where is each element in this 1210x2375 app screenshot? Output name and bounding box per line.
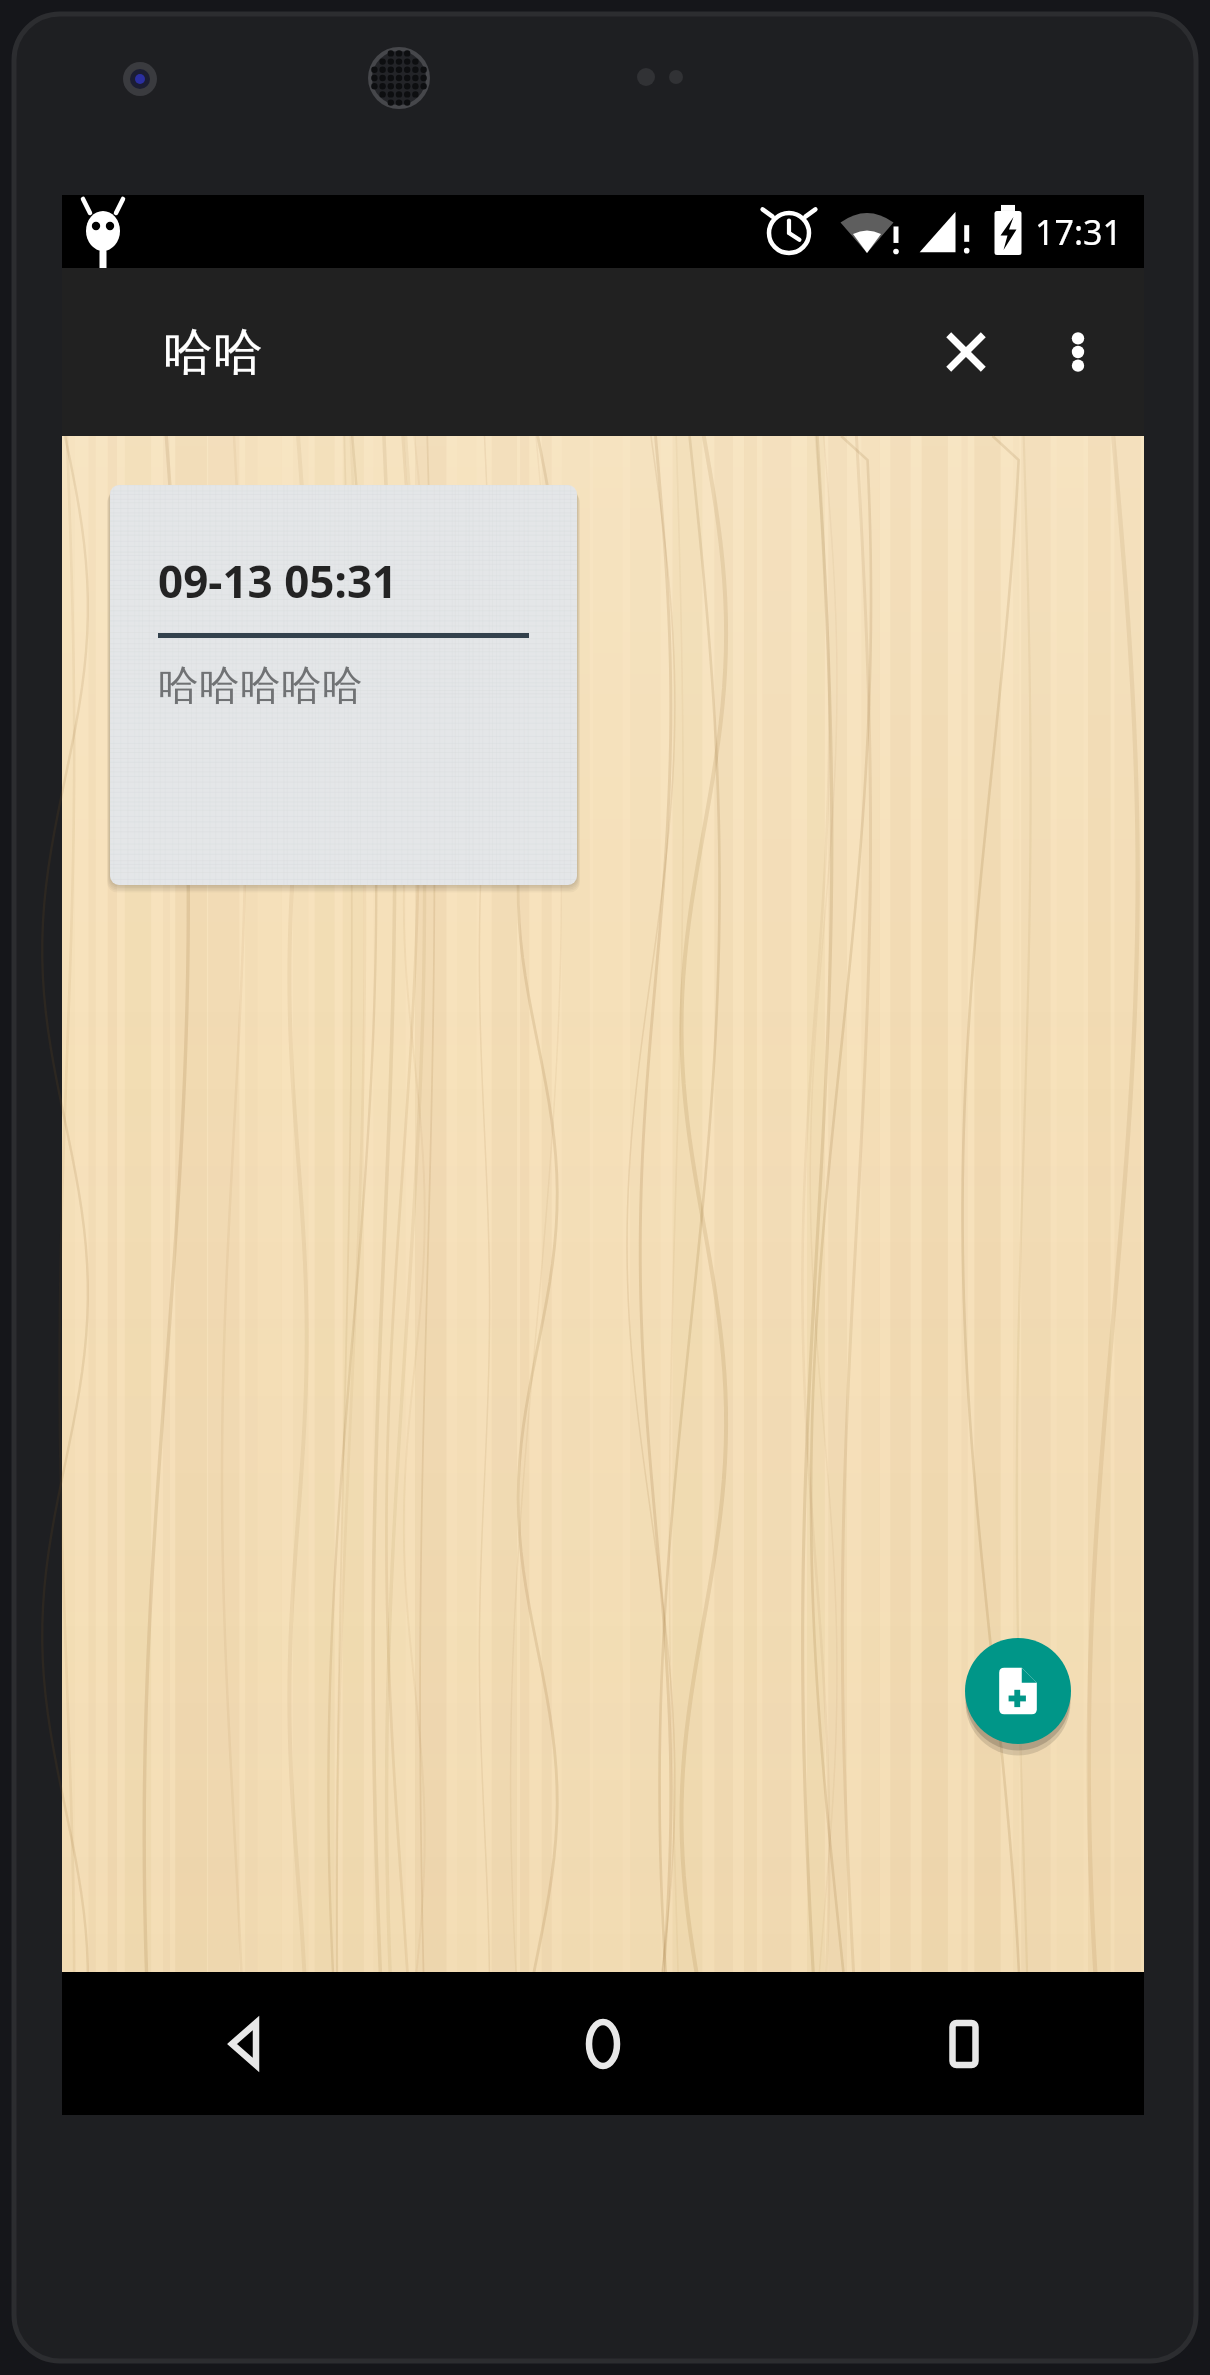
- button[interactable]: New note: [965, 1638, 1071, 1744]
- button[interactable]: Recent apps: [783, 1972, 1144, 2115]
- button[interactable]: Close: [910, 296, 1022, 408]
- staticText: 哈哈: [163, 321, 263, 384]
- staticText: 哈哈哈哈哈: [158, 660, 363, 712]
- staticText: 17:31: [1035, 209, 1122, 255]
- button[interactable]: Home: [422, 1972, 783, 2115]
- staticText: 09-13 05:31: [158, 551, 398, 611]
- button[interactable]: 09-13 05:31: [110, 485, 577, 885]
- button[interactable]: Back: [62, 1972, 422, 2115]
- button[interactable]: More options: [1022, 296, 1134, 408]
